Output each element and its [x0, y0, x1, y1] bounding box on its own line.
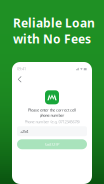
button[interactable]: Get OTP	[17, 139, 87, 149]
staticText: Phone number (e.g. 0712345678)	[24, 119, 79, 124]
staticText: 09:41	[17, 66, 26, 71]
staticText: +254	[20, 129, 28, 134]
staticText: Please enter the correct cell	[28, 107, 76, 113]
staticText: phone number	[39, 113, 64, 118]
staticText: with No Fees	[13, 31, 91, 47]
button[interactable]: Back	[16, 74, 24, 84]
staticText: Get OTP	[45, 142, 59, 147]
staticText: Reliable Loan	[13, 15, 95, 31]
